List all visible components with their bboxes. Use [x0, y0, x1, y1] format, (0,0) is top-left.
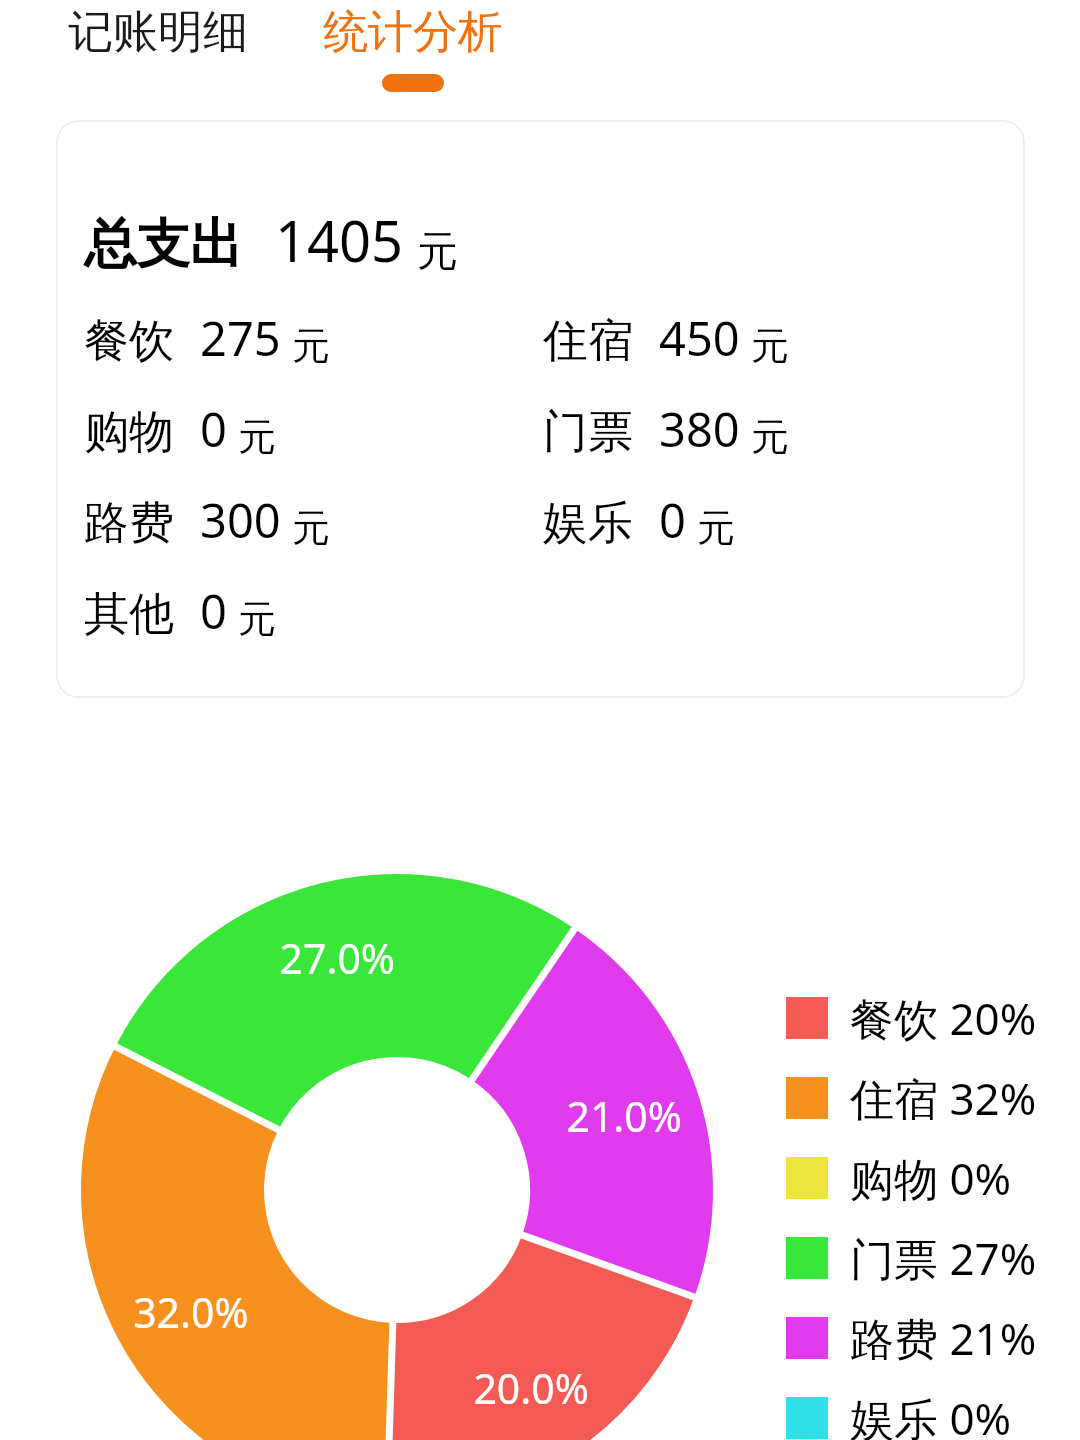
staticText: 餐饮: [84, 313, 174, 370]
staticText: 0: [200, 579, 227, 643]
staticText: 路费: [84, 495, 174, 552]
button[interactable]: 统计分析: [298, 0, 528, 96]
staticText: 380: [659, 397, 740, 461]
button[interactable]: 住宿 32%: [786, 1058, 1037, 1138]
staticText: 元: [238, 413, 276, 461]
staticText: 门票: [543, 404, 633, 461]
staticText: 元: [417, 226, 458, 278]
other: 支出占比环形图: [0, 0, 1080, 1440]
staticText: 路费 21%: [850, 1308, 1037, 1368]
staticText: 元: [751, 322, 789, 370]
button[interactable]: 娱乐 0%: [786, 1378, 1012, 1440]
staticText: 元: [751, 413, 789, 461]
staticText: 300: [200, 488, 281, 552]
staticText: 总支出: [84, 211, 243, 278]
staticText: 餐饮 20%: [850, 988, 1037, 1048]
button[interactable]: 购物 0%: [786, 1138, 1012, 1218]
staticText: 元: [292, 322, 330, 370]
staticText: 统计分析: [323, 4, 503, 61]
button[interactable]: 总支出: [56, 120, 1025, 698]
staticText: 元: [238, 595, 276, 643]
staticText: 住宿: [543, 313, 633, 370]
staticText: 住宿 32%: [850, 1068, 1037, 1128]
staticText: 0: [659, 488, 686, 552]
button[interactable]: 餐饮 20%: [786, 978, 1037, 1058]
staticText: 元: [697, 504, 735, 552]
staticText: 购物: [84, 404, 174, 461]
staticText: 其他: [84, 586, 174, 643]
button[interactable]: 路费 21%: [786, 1298, 1037, 1378]
staticText: 1405: [275, 202, 404, 278]
staticText: 450: [659, 306, 740, 370]
staticText: 0: [200, 397, 227, 461]
staticText: 购物 0%: [850, 1148, 1012, 1208]
staticText: 元: [292, 504, 330, 552]
button[interactable]: 门票 27%: [786, 1218, 1037, 1298]
button[interactable]: 记账明细: [44, 0, 272, 64]
staticText: 娱乐: [543, 495, 633, 552]
staticText: 娱乐 0%: [850, 1388, 1012, 1440]
staticText: 275: [200, 306, 281, 370]
staticText: 记账明细: [68, 4, 248, 61]
staticText: 门票 27%: [850, 1228, 1037, 1288]
